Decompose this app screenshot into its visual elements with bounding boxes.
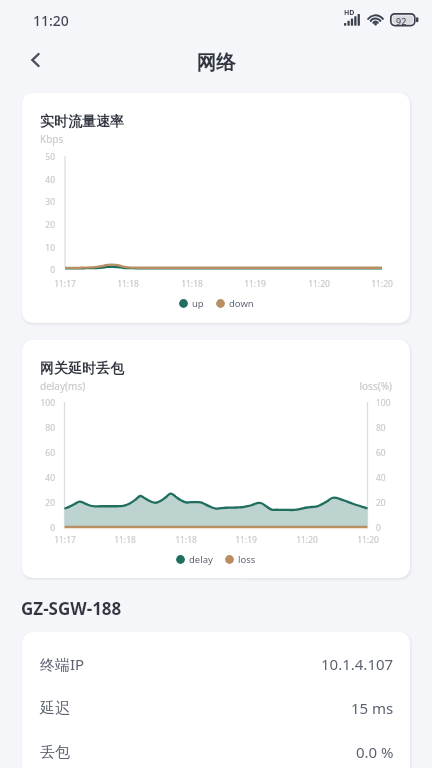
button[interactable]: 终端IP xyxy=(22,642,410,686)
staticText: loss xyxy=(238,553,256,566)
staticText: 延迟 xyxy=(40,699,70,718)
staticText: 11:20 xyxy=(348,534,388,546)
staticText: 40 xyxy=(376,472,402,484)
staticText: 11:18 xyxy=(105,534,145,546)
staticText: delay xyxy=(189,553,213,566)
staticText: 0 xyxy=(31,264,55,276)
staticText: 0 xyxy=(29,522,55,534)
staticText: GZ-SGW-188 xyxy=(21,597,122,620)
staticText: 80 xyxy=(376,422,402,434)
staticText: 15 ms xyxy=(351,698,394,718)
staticText: 11:20 xyxy=(287,534,327,546)
staticText: 100 xyxy=(29,397,55,409)
staticText: 50 xyxy=(31,151,55,163)
staticText: 11:19 xyxy=(226,534,266,546)
button[interactable]: Back xyxy=(18,42,54,78)
staticText: 60 xyxy=(29,447,55,459)
staticText: 终端IP xyxy=(40,654,85,674)
staticText: 20 xyxy=(31,219,55,231)
staticText: 0.0 % xyxy=(356,742,394,762)
staticText: 11:18 xyxy=(172,278,212,290)
staticText: delay(ms) xyxy=(40,379,86,393)
staticText: 20 xyxy=(376,497,402,509)
staticText: Kbps xyxy=(40,132,64,146)
staticText: 11:18 xyxy=(166,534,206,546)
staticText: 11:20 xyxy=(299,278,339,290)
staticText: 10.1.4.107 xyxy=(321,654,394,674)
staticText: 11:19 xyxy=(235,278,275,290)
staticText: 11:17 xyxy=(45,534,85,546)
staticText: 100 xyxy=(376,397,402,409)
staticText: loss(%) xyxy=(22,379,392,393)
button[interactable]: 丢包 xyxy=(22,730,410,768)
staticText: 11:17 xyxy=(45,278,85,290)
staticText: HD xyxy=(344,8,355,18)
staticText: 实时流量速率 xyxy=(40,113,124,131)
staticText: 30 xyxy=(31,196,55,208)
staticText: 92 xyxy=(396,15,407,27)
staticText: 40 xyxy=(29,472,55,484)
staticText: 网关延时丢包 xyxy=(40,360,124,378)
staticText: 80 xyxy=(29,422,55,434)
staticText: 10 xyxy=(31,242,55,254)
staticText: 11:20 xyxy=(362,278,402,290)
staticText: 40 xyxy=(31,174,55,186)
staticText: 网络 xyxy=(0,50,432,75)
staticText: 11:18 xyxy=(108,278,148,290)
button[interactable]: 延迟 xyxy=(22,686,410,730)
staticText: 丢包 xyxy=(40,743,70,762)
staticText: up xyxy=(192,297,204,310)
staticText: 20 xyxy=(29,497,55,509)
staticText: 0 xyxy=(376,522,402,534)
staticText: 11:20 xyxy=(33,11,69,30)
staticText: down xyxy=(229,297,254,310)
staticText: 60 xyxy=(376,447,402,459)
